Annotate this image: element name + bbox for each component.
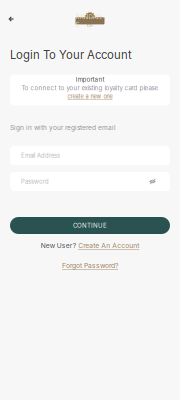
button[interactable]: Forgot Password?: [0, 261, 180, 270]
staticText: To connect to your existing loyalty card…: [21, 84, 158, 92]
staticText: Important: [75, 76, 104, 83]
staticText: Sign in with your registered email: [10, 123, 116, 131]
button[interactable]: Back: [3, 11, 19, 27]
button[interactable]: Create An Account: [78, 241, 139, 250]
staticText: Login To Your Account: [10, 48, 132, 62]
staticText: Email Address: [21, 152, 60, 159]
staticText: Forgot Password?: [62, 261, 118, 270]
staticText: Password: [21, 178, 49, 185]
button[interactable]: CONTINUE: [10, 217, 170, 234]
staticText: EST: [87, 23, 93, 27]
staticText: New User?: [41, 241, 76, 250]
staticText: create a new one: [67, 93, 112, 100]
staticText: CONTINUE: [73, 222, 107, 229]
staticText: Create An Account: [78, 241, 139, 250]
button[interactable]: create a new one: [67, 91, 112, 101]
button[interactable]: Show password: [146, 175, 158, 187]
staticText: RANDALLS: [75, 13, 104, 28]
